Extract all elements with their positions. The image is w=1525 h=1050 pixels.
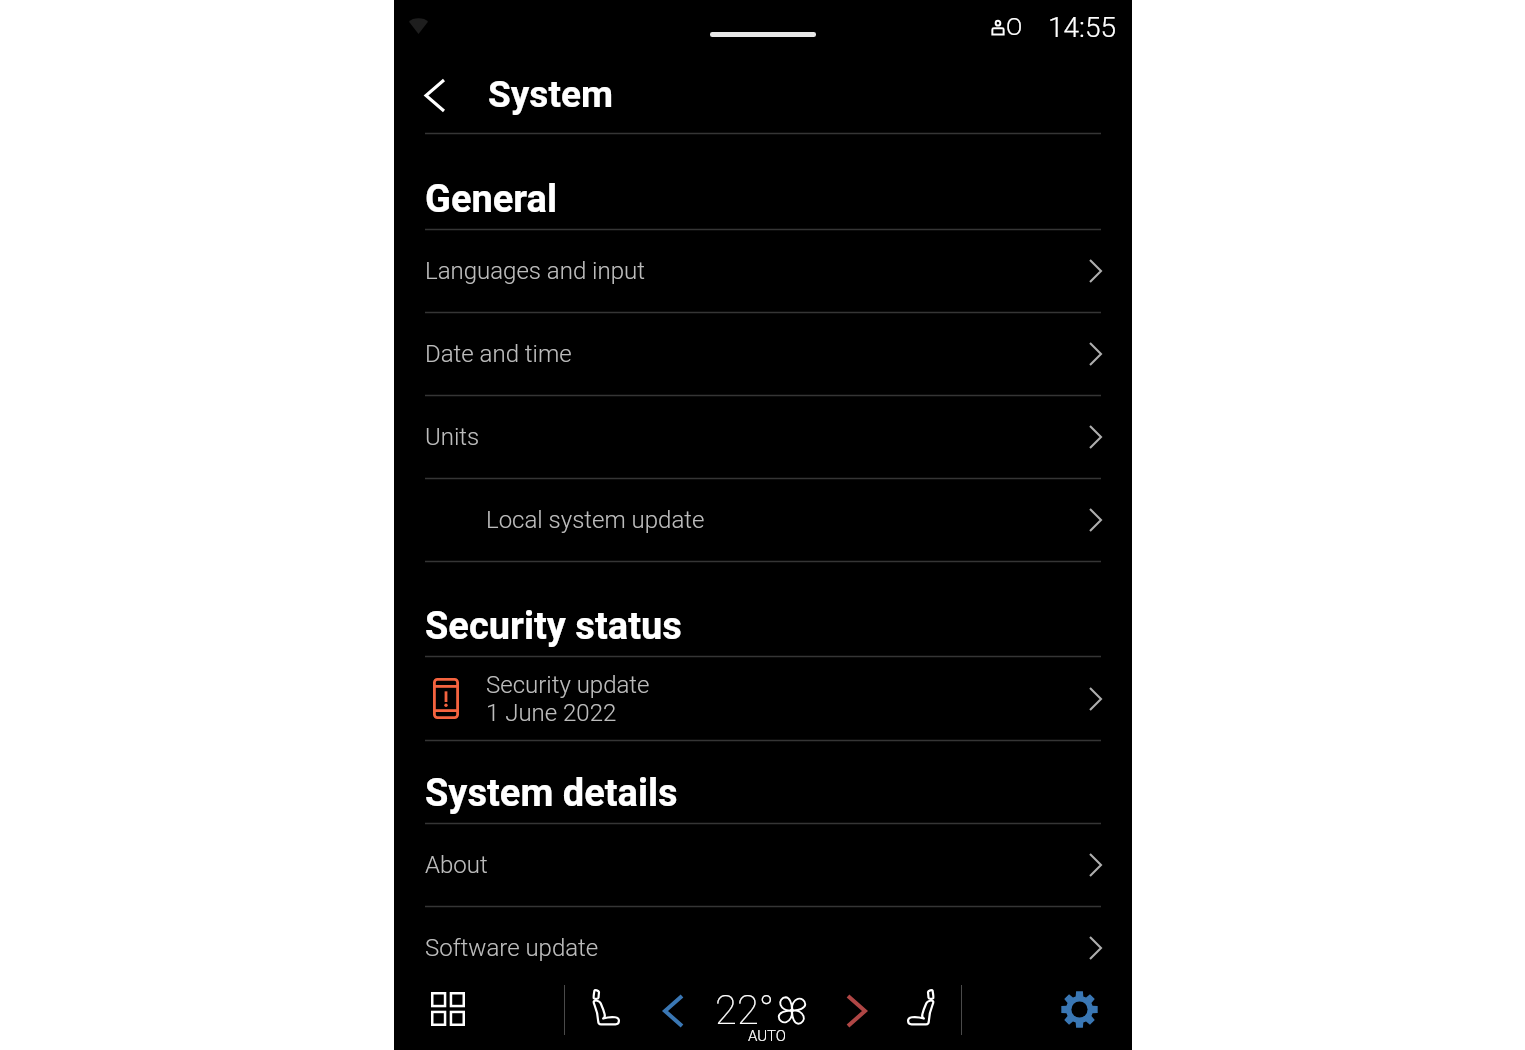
staticText: Date and time — [425, 340, 572, 368]
staticText: Local system update — [486, 506, 705, 534]
button[interactable]: Local system update — [394, 479, 1132, 561]
button[interactable]: All apps — [418, 979, 478, 1039]
staticText: Units — [425, 423, 480, 451]
staticText: 14:55 — [1048, 11, 1117, 44]
button[interactable]: Increase temperature — [834, 981, 879, 1041]
button[interactable]: Driver seat climate — [580, 977, 632, 1038]
button[interactable]: Date and time — [394, 313, 1132, 395]
button[interactable]: Decrease temperature — [651, 981, 696, 1041]
staticText: Security status — [425, 604, 682, 649]
staticText: General — [425, 177, 558, 222]
staticText: 22° — [715, 987, 775, 1034]
button[interactable]: Back — [409, 69, 461, 121]
staticText: System details — [425, 771, 678, 816]
staticText: O — [1006, 13, 1023, 41]
button[interactable]: Units — [394, 396, 1132, 478]
button[interactable]: 22° — [712, 980, 812, 1045]
button[interactable]: Settings — [1048, 978, 1111, 1041]
staticText: About — [425, 851, 488, 879]
button[interactable]: About — [394, 824, 1132, 906]
staticText: Security update — [486, 671, 650, 699]
button[interactable]: Passenger seat climate — [895, 977, 947, 1038]
staticText: 1 June 2022 — [486, 699, 617, 727]
button[interactable]: Languages and input — [394, 230, 1132, 312]
button[interactable]: Security update — [394, 657, 1132, 740]
staticText: Software update — [425, 934, 599, 962]
button[interactable]: Software update — [394, 907, 1132, 989]
staticText: Languages and input — [425, 257, 645, 285]
staticText: AUTO — [748, 1027, 787, 1045]
staticText: System — [488, 73, 613, 116]
